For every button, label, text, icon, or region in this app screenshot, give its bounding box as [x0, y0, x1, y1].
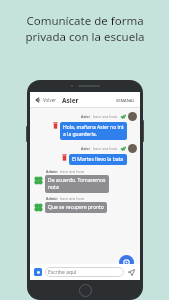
staticText: Que se recupere pronto: [48, 204, 104, 211]
button[interactable]: Escribe aquí: [45, 267, 124, 277]
staticText: hace una hora: [93, 114, 118, 119]
staticText: Asier: [81, 146, 91, 151]
button[interactable]: Volver: [35, 97, 57, 103]
staticText: hace una hora: [93, 146, 118, 151]
button[interactable]: Nuevo mensaje: [119, 255, 134, 270]
button[interactable]: El Martes llevo la bata: [69, 154, 127, 165]
staticText: El Martes llevo la bata: [72, 156, 124, 163]
staticText: Asier: [62, 96, 79, 105]
button[interactable]: SEMANAL: [116, 98, 135, 103]
button[interactable]: Adjuntar foto: [34, 268, 42, 276]
button[interactable]: Que se recupere pronto: [45, 202, 107, 213]
staticText: Volver: [43, 97, 57, 103]
staticText: hace una hora: [60, 169, 85, 174]
button[interactable]: De acuerdo. Tomaremos nota: [45, 175, 109, 193]
staticText: De acuerdo. Tomaremos nota: [48, 177, 106, 191]
staticText: Admin: [46, 169, 58, 174]
staticText: Comunícate de forma privada con la escue…: [25, 13, 145, 44]
staticText: Escribe aquí: [48, 269, 77, 276]
staticText: Hola, mañana Asier no irá a la guardería…: [63, 124, 124, 138]
button[interactable]: Hola, mañana Asier no irá a la guardería…: [60, 122, 127, 140]
staticText: Admin: [46, 196, 58, 201]
button[interactable]: Enviar: [127, 268, 136, 277]
staticText: hace una hora: [60, 196, 85, 201]
staticText: Asier: [81, 114, 91, 119]
